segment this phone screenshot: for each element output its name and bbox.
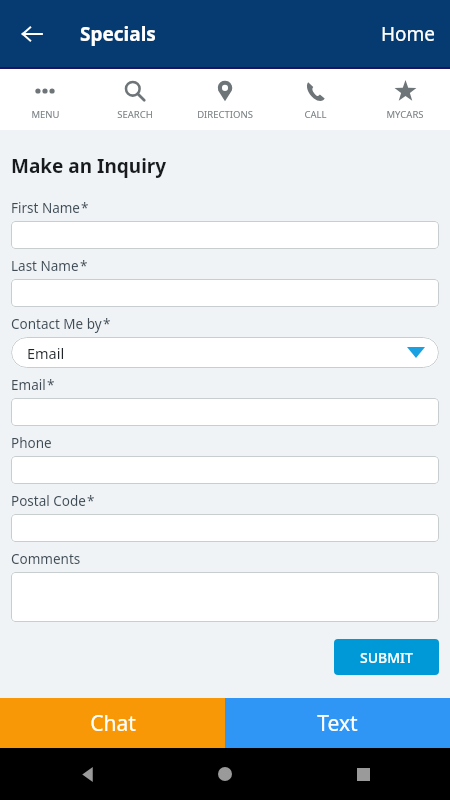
staticText: SEARCH xyxy=(117,108,153,121)
button[interactable]: MYCARS xyxy=(360,69,450,130)
button[interactable]: Chat xyxy=(0,698,225,748)
staticText: CALL xyxy=(304,108,327,121)
staticText: Comments xyxy=(11,550,81,568)
staticText: Email xyxy=(11,376,46,394)
staticText: SUBMIT xyxy=(360,648,413,667)
button[interactable]: MENU xyxy=(0,69,90,130)
button[interactable]: DIRECTIONS xyxy=(180,69,270,130)
button[interactable] xyxy=(11,221,439,249)
staticText: * xyxy=(80,257,88,275)
button[interactable]: SEARCH xyxy=(90,69,180,130)
staticText: * xyxy=(103,315,111,333)
button[interactable] xyxy=(11,572,439,622)
staticText: Make an Inquiry xyxy=(11,153,167,179)
staticText: Specials xyxy=(80,21,156,47)
button[interactable]: SUBMIT xyxy=(334,639,439,675)
staticText: Last Name xyxy=(11,257,79,275)
staticText: Contact Me by xyxy=(11,315,102,333)
staticText: Email xyxy=(27,343,65,363)
staticText: Phone xyxy=(11,434,52,452)
button[interactable]: Back xyxy=(10,12,54,56)
button[interactable]: Email xyxy=(11,337,439,368)
button[interactable] xyxy=(11,398,439,426)
staticText: Postal Code xyxy=(11,492,86,510)
button[interactable]: Home xyxy=(208,757,242,791)
staticText: * xyxy=(87,492,95,510)
staticText: Chat xyxy=(90,709,136,738)
button[interactable] xyxy=(11,514,439,542)
button[interactable]: Back xyxy=(70,757,104,791)
staticText: Home xyxy=(381,21,436,47)
staticText: DIRECTIONS xyxy=(197,108,253,121)
button[interactable]: Recent apps xyxy=(346,757,380,791)
staticText: MYCARS xyxy=(386,108,424,121)
button[interactable] xyxy=(11,279,439,307)
staticText: * xyxy=(81,199,89,217)
staticText: Text xyxy=(317,709,358,738)
button[interactable]: Home xyxy=(367,11,450,57)
staticText: MENU xyxy=(31,108,60,121)
button[interactable] xyxy=(11,456,439,484)
staticText: First Name xyxy=(11,199,80,217)
staticText: * xyxy=(47,376,55,394)
button[interactable]: Text xyxy=(225,698,450,748)
button[interactable]: CALL xyxy=(270,69,360,130)
